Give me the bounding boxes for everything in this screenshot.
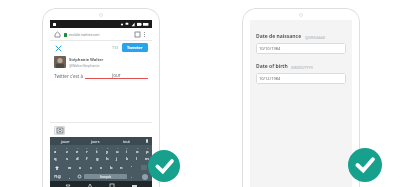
staticText: (JJ/MM/AAAA) (305, 36, 326, 40)
staticText: 8 (126, 146, 128, 149)
button[interactable]: n (116, 163, 126, 172)
button[interactable]: j (112, 154, 122, 163)
button[interactable]: s (61, 154, 72, 163)
staticText: w (68, 165, 72, 170)
button[interactable]: Voice input (142, 137, 152, 145)
button[interactable]: Home (54, 31, 61, 38)
button[interactable]: , (65, 172, 74, 181)
staticText: (MM/DD/YYYY) (291, 66, 313, 70)
button[interactable]: Tweeter (122, 43, 148, 52)
button[interactable]: Recents (108, 182, 116, 187)
button[interactable]: 0 (142, 145, 152, 154)
button[interactable]: h (102, 154, 112, 163)
button[interactable]: jouer (50, 137, 80, 145)
staticText: i (126, 149, 128, 154)
button[interactable]: v (96, 163, 106, 172)
staticText: d (76, 156, 79, 161)
staticText: x (79, 165, 82, 170)
button[interactable]: Keyboard (130, 182, 138, 187)
staticText: s (66, 156, 68, 161)
staticText: 10/12/1984 (259, 76, 281, 81)
button[interactable]: Home (86, 182, 94, 187)
button[interactable]: Shift (50, 163, 64, 172)
staticText: n (120, 165, 123, 170)
button[interactable]: Delete (136, 163, 152, 172)
button[interactable]: 8 (122, 145, 132, 154)
button[interactable]: Valid (148, 150, 180, 182)
button[interactable]: jour (85, 72, 148, 79)
staticText: mobile.twitter.com (69, 32, 100, 37)
staticText: l (136, 156, 138, 161)
button[interactable]: français (84, 174, 127, 179)
staticText: r (86, 149, 88, 154)
button[interactable]: k (122, 154, 132, 163)
button[interactable]: 6 (102, 145, 112, 154)
staticText: Twitter c'est à (54, 73, 85, 79)
button[interactable]: ?1☺ (50, 172, 65, 181)
button[interactable]: c (86, 163, 96, 172)
button[interactable]: Close (54, 44, 62, 52)
staticText: b (110, 165, 113, 170)
staticText: v (100, 165, 103, 170)
staticText: Date of birth (256, 63, 288, 70)
button[interactable]: q (50, 154, 61, 163)
button[interactable]: ' (126, 163, 136, 172)
staticText: ?1☺ (54, 174, 62, 179)
staticText: Date de naissance (256, 33, 302, 40)
staticText: k (126, 156, 129, 161)
staticText: q (54, 156, 57, 161)
button[interactable]: l (132, 154, 142, 163)
staticText: jour (112, 72, 121, 78)
staticText: 1 (55, 146, 57, 149)
button[interactable]: 9 (132, 145, 142, 154)
button[interactable]: d (72, 154, 82, 163)
staticText: 3 (77, 146, 79, 149)
button[interactable]: tout (111, 137, 142, 145)
staticText: jours (91, 139, 100, 144)
staticText: tout (123, 139, 130, 144)
button[interactable]: Valid (348, 148, 382, 182)
button[interactable]: . (127, 172, 137, 181)
button[interactable]: mobile.twitter.com (64, 30, 134, 39)
button[interactable]: Tabs (134, 31, 141, 38)
button[interactable]: b (106, 163, 116, 172)
button[interactable]: w (64, 163, 75, 172)
button[interactable]: jours (80, 137, 111, 145)
staticText: c (90, 165, 92, 170)
button[interactable]: 7 (112, 145, 122, 154)
staticText: f (86, 156, 88, 161)
button[interactable]: 10/10/1984 (256, 43, 346, 54)
staticText: g (96, 156, 99, 161)
staticText: français (100, 175, 112, 179)
button[interactable]: 10/12/1984 (256, 73, 346, 84)
staticText: 4 (86, 146, 88, 149)
button[interactable]: m (142, 154, 152, 163)
button[interactable]: 1 (50, 145, 61, 154)
button[interactable]: 4 (82, 145, 92, 154)
button[interactable]: 3 (72, 145, 82, 154)
staticText: jouer (61, 139, 70, 144)
staticText: j (116, 156, 118, 161)
button[interactable]: f (82, 154, 92, 163)
button[interactable]: More options (141, 31, 148, 38)
staticText: ' (131, 165, 132, 170)
staticText: 7 (117, 146, 119, 149)
button[interactable]: Add photo (54, 126, 65, 135)
staticText: 0 (147, 146, 149, 149)
button[interactable]: Back (64, 182, 72, 187)
button[interactable]: g (92, 154, 102, 163)
staticText: 6 (107, 146, 109, 149)
button[interactable]: Emoji (74, 172, 84, 181)
button[interactable]: 5 (92, 145, 102, 154)
button[interactable]: Enter (137, 172, 152, 181)
staticText: Tweeter (127, 45, 143, 50)
staticText: p (146, 149, 149, 154)
staticText: Stéphanie Walter (69, 57, 104, 62)
button[interactable]: 2 (61, 145, 72, 154)
staticText: o (136, 149, 139, 154)
button[interactable]: x (75, 163, 86, 172)
staticText: 9 (137, 146, 139, 149)
staticText: @WalterStephanie (69, 63, 100, 68)
staticText: 10/10/1984 (259, 46, 281, 51)
staticText: z (66, 149, 68, 154)
